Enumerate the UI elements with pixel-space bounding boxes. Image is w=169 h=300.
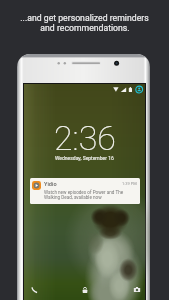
staticText: Wednesday, September 16 [55,155,114,161]
staticText: Walking Dead, available now [44,195,102,200]
staticText: Yidio [44,181,57,188]
button[interactable]: Yidio [30,178,140,204]
button[interactable]: Camera [130,283,144,297]
staticText: 2:36 [54,118,116,158]
button[interactable]: Phone [28,283,42,297]
staticText: 1:39 PM [122,181,137,186]
other: Status icons [24,84,145,300]
staticText: Watch new episodes of Power and The [44,190,124,195]
staticText: ...and get personalized reminders [20,13,149,23]
button[interactable]: Unlock [78,283,92,297]
staticText: and recommendations. [40,23,130,33]
